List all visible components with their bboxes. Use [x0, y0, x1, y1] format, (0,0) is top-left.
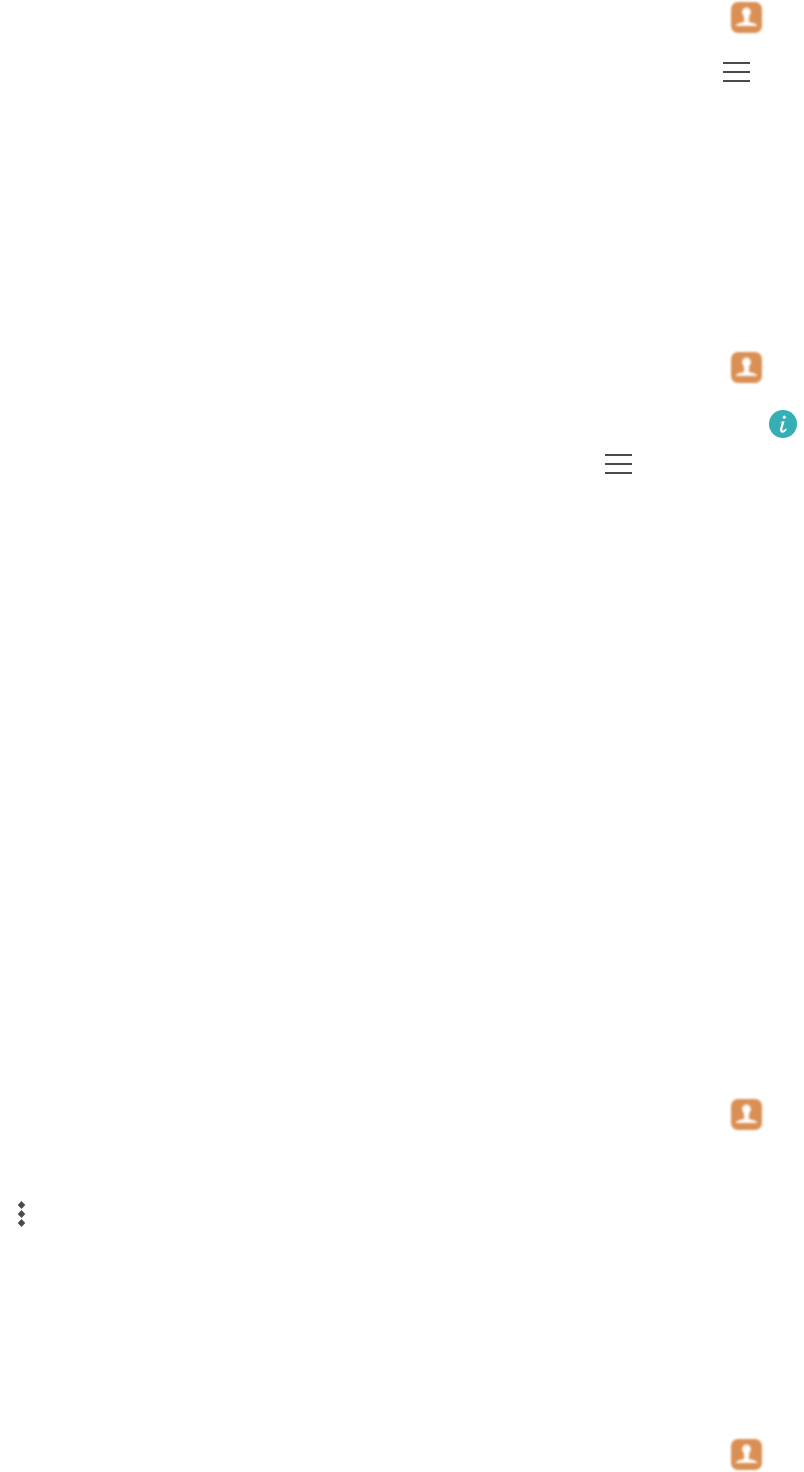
button[interactable]: Contact photo: [731, 1099, 762, 1130]
button[interactable]: More options: [17, 1201, 26, 1227]
button[interactable]: Open menu: [723, 61, 750, 82]
button[interactable]: Contact photo: [731, 352, 762, 383]
button[interactable]: More information: [769, 410, 797, 438]
button[interactable]: Contact photo: [731, 1439, 762, 1470]
button[interactable]: Open menu: [605, 453, 632, 474]
button[interactable]: Contact photo: [731, 2, 762, 33]
